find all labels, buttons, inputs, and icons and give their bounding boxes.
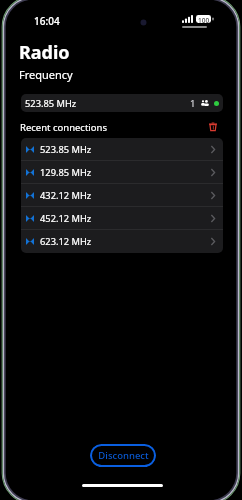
staticText: 16:04 [34, 14, 60, 28]
staticText: 432.12 MHz [40, 189, 92, 202]
staticText: 100 [198, 16, 210, 25]
staticText: Disconnect [98, 449, 149, 462]
staticText: 452.12 MHz [40, 212, 92, 225]
button[interactable]: Disconnect [90, 444, 156, 467]
staticText: 129.85 MHz [40, 166, 92, 179]
staticText: 1 [190, 97, 196, 110]
button[interactable]: Clear recent connections [206, 121, 220, 135]
staticText: Frequency [19, 67, 73, 82]
button[interactable]: 623.12 MHz [21, 230, 223, 253]
button[interactable]: 452.12 MHz [21, 207, 223, 229]
staticText: Radio [19, 40, 70, 65]
staticText: Recent connections [20, 121, 107, 134]
button[interactable]: 523.85 MHz [21, 94, 223, 112]
staticText: 623.12 MHz [40, 235, 92, 248]
staticText: 523.85 MHz [25, 97, 77, 110]
button[interactable]: 129.85 MHz [21, 161, 223, 183]
button[interactable]: 523.85 MHz [21, 138, 223, 160]
staticText: 523.85 MHz [40, 143, 92, 156]
button[interactable]: 432.12 MHz [21, 184, 223, 206]
